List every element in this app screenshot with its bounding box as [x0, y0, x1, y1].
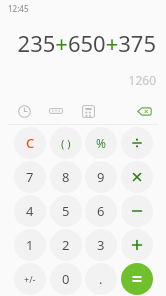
button[interactable]: Parentheses: [50, 127, 82, 159]
button[interactable]: Divide: [121, 127, 153, 159]
staticText: 3: [97, 236, 105, 254]
button[interactable]: Toggle sign: [14, 263, 46, 295]
button[interactable]: 1: [14, 229, 46, 261]
button[interactable]: History: [14, 101, 34, 121]
button[interactable]: Percent: [85, 127, 117, 159]
button[interactable]: 7: [14, 161, 46, 193]
staticText: 5: [62, 202, 70, 220]
button[interactable]: Scientific calculator: [78, 101, 98, 121]
button[interactable]: Multiply: [121, 161, 153, 193]
staticText: %: [96, 135, 106, 151]
button[interactable]: 3: [85, 229, 117, 261]
staticText: 12:45: [8, 3, 29, 14]
button[interactable]: 4: [14, 195, 46, 227]
staticText: 9: [97, 168, 105, 186]
staticText: 4: [26, 202, 34, 220]
staticText: 2: [62, 236, 70, 254]
button[interactable]: Minus: [121, 195, 153, 227]
button[interactable]: 2: [50, 229, 82, 261]
button[interactable]: 8: [50, 161, 82, 193]
staticText: 6: [97, 202, 105, 220]
staticText: +/-: [24, 273, 36, 285]
button[interactable]: Clear: [14, 127, 46, 159]
staticText: 0: [62, 270, 70, 288]
button[interactable]: 5: [50, 195, 82, 227]
staticText: ( ): [61, 136, 71, 151]
staticText: 1260: [128, 72, 156, 88]
button[interactable]: 6: [85, 195, 117, 227]
staticText: C: [26, 134, 35, 152]
button[interactable]: Unit converter: [46, 101, 66, 121]
staticText: 1: [26, 236, 34, 254]
staticText: 235+650+375: [17, 28, 156, 58]
button[interactable]: 9: [85, 161, 117, 193]
button[interactable]: Plus: [121, 229, 153, 261]
staticText: .: [99, 270, 103, 288]
button[interactable]: Backspace: [134, 101, 154, 121]
button[interactable]: Equals: [121, 263, 153, 295]
staticText: 7: [26, 168, 34, 186]
button[interactable]: 0: [50, 263, 82, 295]
button[interactable]: Decimal point: [85, 263, 117, 295]
staticText: 8: [62, 168, 70, 186]
